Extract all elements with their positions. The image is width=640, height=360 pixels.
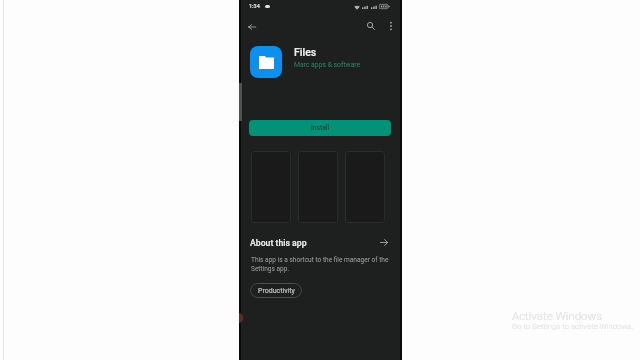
staticText: Activate Windows — [512, 309, 603, 322]
staticText: Productivity — [258, 287, 295, 295]
staticText: Install — [311, 124, 330, 132]
button[interactable]: Search — [360, 15, 382, 37]
staticText: This app is a shortcut to the file manag… — [251, 256, 393, 273]
button[interactable]: Screenshot — [345, 151, 385, 223]
button[interactable]: Productivity — [250, 283, 302, 298]
button[interactable]: About this app — [250, 234, 391, 250]
button[interactable]: Screenshot — [251, 151, 291, 223]
button[interactable]: More options — [380, 15, 401, 36]
button[interactable]: Screenshot — [298, 151, 338, 223]
button[interactable]: Install — [249, 120, 391, 136]
staticText: 1:34 — [249, 3, 260, 9]
staticText: Files — [294, 46, 317, 58]
button[interactable]: Files app icon — [250, 46, 282, 78]
staticText: Marc apps & software — [294, 61, 361, 69]
staticText: About this app — [250, 238, 307, 248]
staticText: Go to Settings to activate Windows. — [512, 322, 634, 331]
button[interactable]: Back — [241, 16, 263, 38]
